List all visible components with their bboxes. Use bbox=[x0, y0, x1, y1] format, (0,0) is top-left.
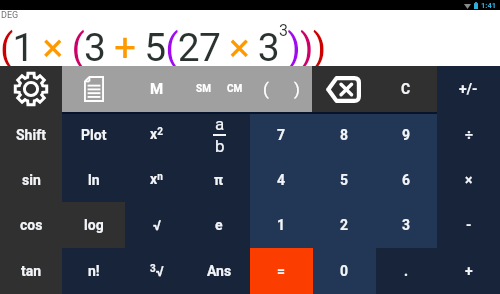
staticText: M bbox=[150, 80, 164, 98]
button[interactable]: 7 bbox=[250, 112, 313, 157]
staticText: 3 bbox=[402, 217, 411, 233]
button[interactable]: 0 bbox=[313, 248, 376, 294]
staticText: CM bbox=[227, 83, 243, 95]
staticText: n! bbox=[88, 263, 100, 279]
button[interactable]: +/- bbox=[437, 66, 500, 112]
staticText: Ans bbox=[207, 263, 232, 279]
button[interactable]: 4 bbox=[250, 157, 313, 202]
staticText: ) bbox=[294, 79, 300, 99]
staticText: ln bbox=[88, 172, 100, 188]
button[interactable]: - bbox=[437, 202, 500, 248]
staticText: 1:41 bbox=[481, 1, 497, 10]
staticText: 3√ bbox=[150, 263, 164, 280]
staticText: = bbox=[277, 263, 286, 279]
staticText: x2 bbox=[150, 126, 163, 143]
staticText: 5 bbox=[340, 172, 349, 188]
button[interactable]: ln bbox=[62, 157, 125, 202]
button[interactable]: tan bbox=[0, 248, 62, 294]
button[interactable]: Settings bbox=[0, 66, 62, 112]
button[interactable]: Shift bbox=[0, 112, 62, 157]
staticText: +/- bbox=[459, 81, 478, 97]
staticText: . bbox=[404, 263, 409, 279]
staticText: π bbox=[214, 172, 224, 188]
staticText: 6 bbox=[402, 172, 411, 188]
staticText: 8 bbox=[340, 127, 349, 143]
staticText: 9 bbox=[402, 127, 411, 143]
staticText: 7 bbox=[277, 127, 286, 143]
staticText: C bbox=[401, 81, 411, 97]
staticText: + bbox=[465, 263, 473, 279]
staticText: Plot bbox=[81, 127, 107, 143]
staticText: DEG bbox=[1, 10, 19, 21]
button[interactable]: . bbox=[376, 248, 437, 294]
button[interactable]: n! bbox=[62, 248, 125, 294]
staticText: sin bbox=[22, 172, 41, 188]
staticText: ÷ bbox=[465, 127, 473, 143]
staticText: √ bbox=[153, 217, 161, 233]
button[interactable]: 5 bbox=[313, 157, 376, 202]
button[interactable]: sin bbox=[0, 157, 62, 202]
staticText: 0 bbox=[340, 263, 349, 279]
button[interactable]: 8 bbox=[313, 112, 376, 157]
button[interactable]: ) bbox=[281, 66, 312, 112]
button[interactable]: e bbox=[188, 202, 250, 248]
button[interactable]: Plot bbox=[62, 112, 125, 157]
staticText: ( bbox=[263, 79, 269, 99]
staticText: Shift bbox=[16, 127, 46, 143]
staticText: a bbox=[215, 114, 225, 134]
button[interactable]: ( bbox=[250, 66, 281, 112]
staticText: b bbox=[215, 136, 225, 156]
button[interactable]: √ bbox=[125, 202, 188, 248]
button[interactable]: M bbox=[125, 66, 188, 112]
button[interactable]: × bbox=[437, 157, 500, 202]
button[interactable]: = bbox=[250, 248, 313, 294]
button[interactable]: Ans bbox=[188, 248, 250, 294]
staticText: cos bbox=[20, 217, 43, 233]
staticText: - bbox=[466, 217, 472, 233]
staticText: 4 bbox=[277, 172, 286, 188]
button[interactable]: SM bbox=[188, 66, 219, 112]
button[interactable]: π bbox=[188, 157, 250, 202]
button[interactable]: 2 bbox=[313, 202, 376, 248]
staticText: log bbox=[84, 217, 104, 233]
staticText: SM bbox=[196, 83, 211, 95]
button[interactable]: a bbox=[188, 112, 250, 157]
staticText: 2 bbox=[340, 217, 349, 233]
button[interactable]: C bbox=[375, 66, 437, 112]
staticText: (1 × (3 + 5(27 × 33))) bbox=[0, 21, 326, 71]
button[interactable]: xn bbox=[125, 157, 188, 202]
button[interactable]: 9 bbox=[376, 112, 437, 157]
staticText: e bbox=[215, 217, 223, 233]
button[interactable]: ÷ bbox=[437, 112, 500, 157]
staticText: 1 bbox=[277, 217, 286, 233]
staticText: tan bbox=[21, 263, 42, 279]
button[interactable]: History bbox=[62, 66, 125, 112]
button[interactable]: 3√ bbox=[125, 248, 188, 294]
button[interactable]: 3 bbox=[376, 202, 437, 248]
button[interactable]: 6 bbox=[376, 157, 437, 202]
button[interactable]: 1 bbox=[250, 202, 313, 248]
staticText: xn bbox=[150, 171, 163, 188]
button[interactable]: + bbox=[437, 248, 500, 294]
button[interactable]: Backspace bbox=[312, 66, 375, 112]
staticText: × bbox=[465, 172, 473, 188]
button[interactable]: x2 bbox=[125, 112, 188, 157]
button[interactable]: log bbox=[62, 202, 125, 248]
button[interactable]: cos bbox=[0, 202, 62, 248]
button[interactable]: CM bbox=[219, 66, 250, 112]
